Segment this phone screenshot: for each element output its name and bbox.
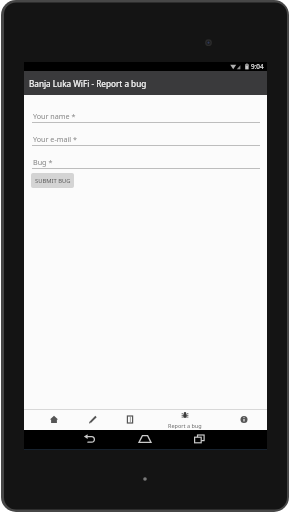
button[interactable]: SUBMIT BUG	[31, 173, 74, 188]
button[interactable]: Your name *	[32, 105, 260, 123]
button[interactable]: Your e-mail *	[32, 128, 260, 146]
staticText: Your e-mail *	[33, 134, 77, 144]
staticText: Your name *	[33, 111, 76, 121]
staticText: 9:04	[251, 62, 264, 71]
staticText: Report a bug	[168, 422, 202, 429]
button[interactable]	[74, 410, 111, 430]
button[interactable]	[34, 410, 74, 430]
button[interactable]: Bug *	[32, 151, 260, 169]
button[interactable]	[221, 410, 267, 430]
staticText: SUBMIT BUG	[35, 177, 71, 185]
button[interactable]: Report a bug	[149, 410, 221, 430]
button[interactable]	[111, 410, 149, 430]
staticText: Bug *	[33, 157, 53, 167]
staticText: Banja Luka WiFi - Report a bug	[29, 78, 147, 89]
